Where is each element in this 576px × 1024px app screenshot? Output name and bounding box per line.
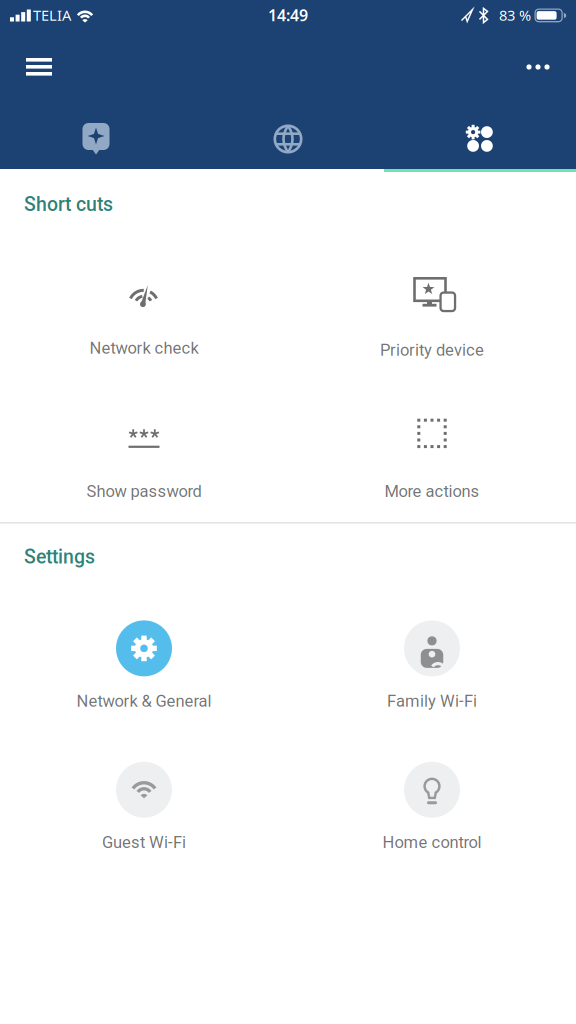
button[interactable]: Messages <box>0 104 192 169</box>
button[interactable]: Network <box>192 104 384 169</box>
staticText: Home control <box>382 833 481 852</box>
staticText: 14:49 <box>268 4 308 26</box>
button[interactable]: More options <box>526 30 550 104</box>
button[interactable]: Priority device <box>288 277 576 360</box>
staticText: Priority device <box>380 340 484 360</box>
staticText: Short cuts <box>24 193 113 216</box>
button[interactable]: Shortcuts <box>384 104 576 169</box>
staticText: Network check <box>89 338 198 358</box>
button[interactable]: Menu <box>26 30 52 104</box>
button[interactable]: Home control <box>288 762 576 852</box>
button[interactable]: More actions <box>288 419 576 501</box>
button[interactable]: Guest Wi-Fi <box>0 762 288 852</box>
staticText: Settings <box>24 546 95 568</box>
staticText: TELIA <box>33 5 71 25</box>
button[interactable]: Network check <box>0 279 288 358</box>
button[interactable]: Family Wi-Fi <box>288 620 576 711</box>
staticText: Network & General <box>76 691 211 711</box>
staticText: Show password <box>86 482 201 501</box>
staticText: 83 % <box>495 5 535 25</box>
staticText: More actions <box>384 482 479 501</box>
button[interactable]: Network & General <box>0 620 288 711</box>
button[interactable]: Show password <box>0 419 288 501</box>
staticText: Family Wi-Fi <box>387 691 477 711</box>
staticText: Guest Wi-Fi <box>102 833 186 852</box>
